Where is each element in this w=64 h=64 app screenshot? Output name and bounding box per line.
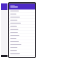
button[interactable] — [8, 46, 35, 49]
button[interactable] — [8, 43, 35, 46]
button[interactable] — [8, 52, 35, 55]
button[interactable] — [8, 31, 35, 34]
button[interactable] — [8, 37, 35, 40]
button[interactable] — [8, 49, 35, 52]
button[interactable] — [8, 34, 35, 37]
button[interactable] — [8, 40, 35, 43]
button[interactable] — [8, 25, 35, 28]
button[interactable] — [8, 16, 35, 19]
button[interactable] — [8, 10, 35, 13]
button[interactable] — [8, 19, 35, 22]
button[interactable] — [8, 22, 35, 25]
button[interactable] — [8, 28, 35, 31]
button[interactable] — [8, 13, 35, 16]
